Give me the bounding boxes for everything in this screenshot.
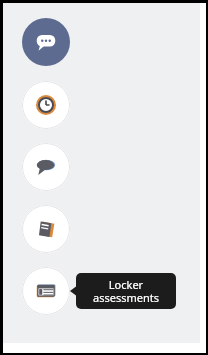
button[interactable]: History — [22, 81, 70, 129]
staticText: Locker assessments — [93, 277, 159, 305]
button[interactable]: Comments — [22, 143, 70, 191]
button[interactable]: Messages — [22, 18, 70, 66]
button[interactable]: Locker assessments — [22, 267, 70, 315]
button[interactable]: Library — [22, 205, 70, 253]
button[interactable]: Locker assessments — [76, 273, 176, 309]
